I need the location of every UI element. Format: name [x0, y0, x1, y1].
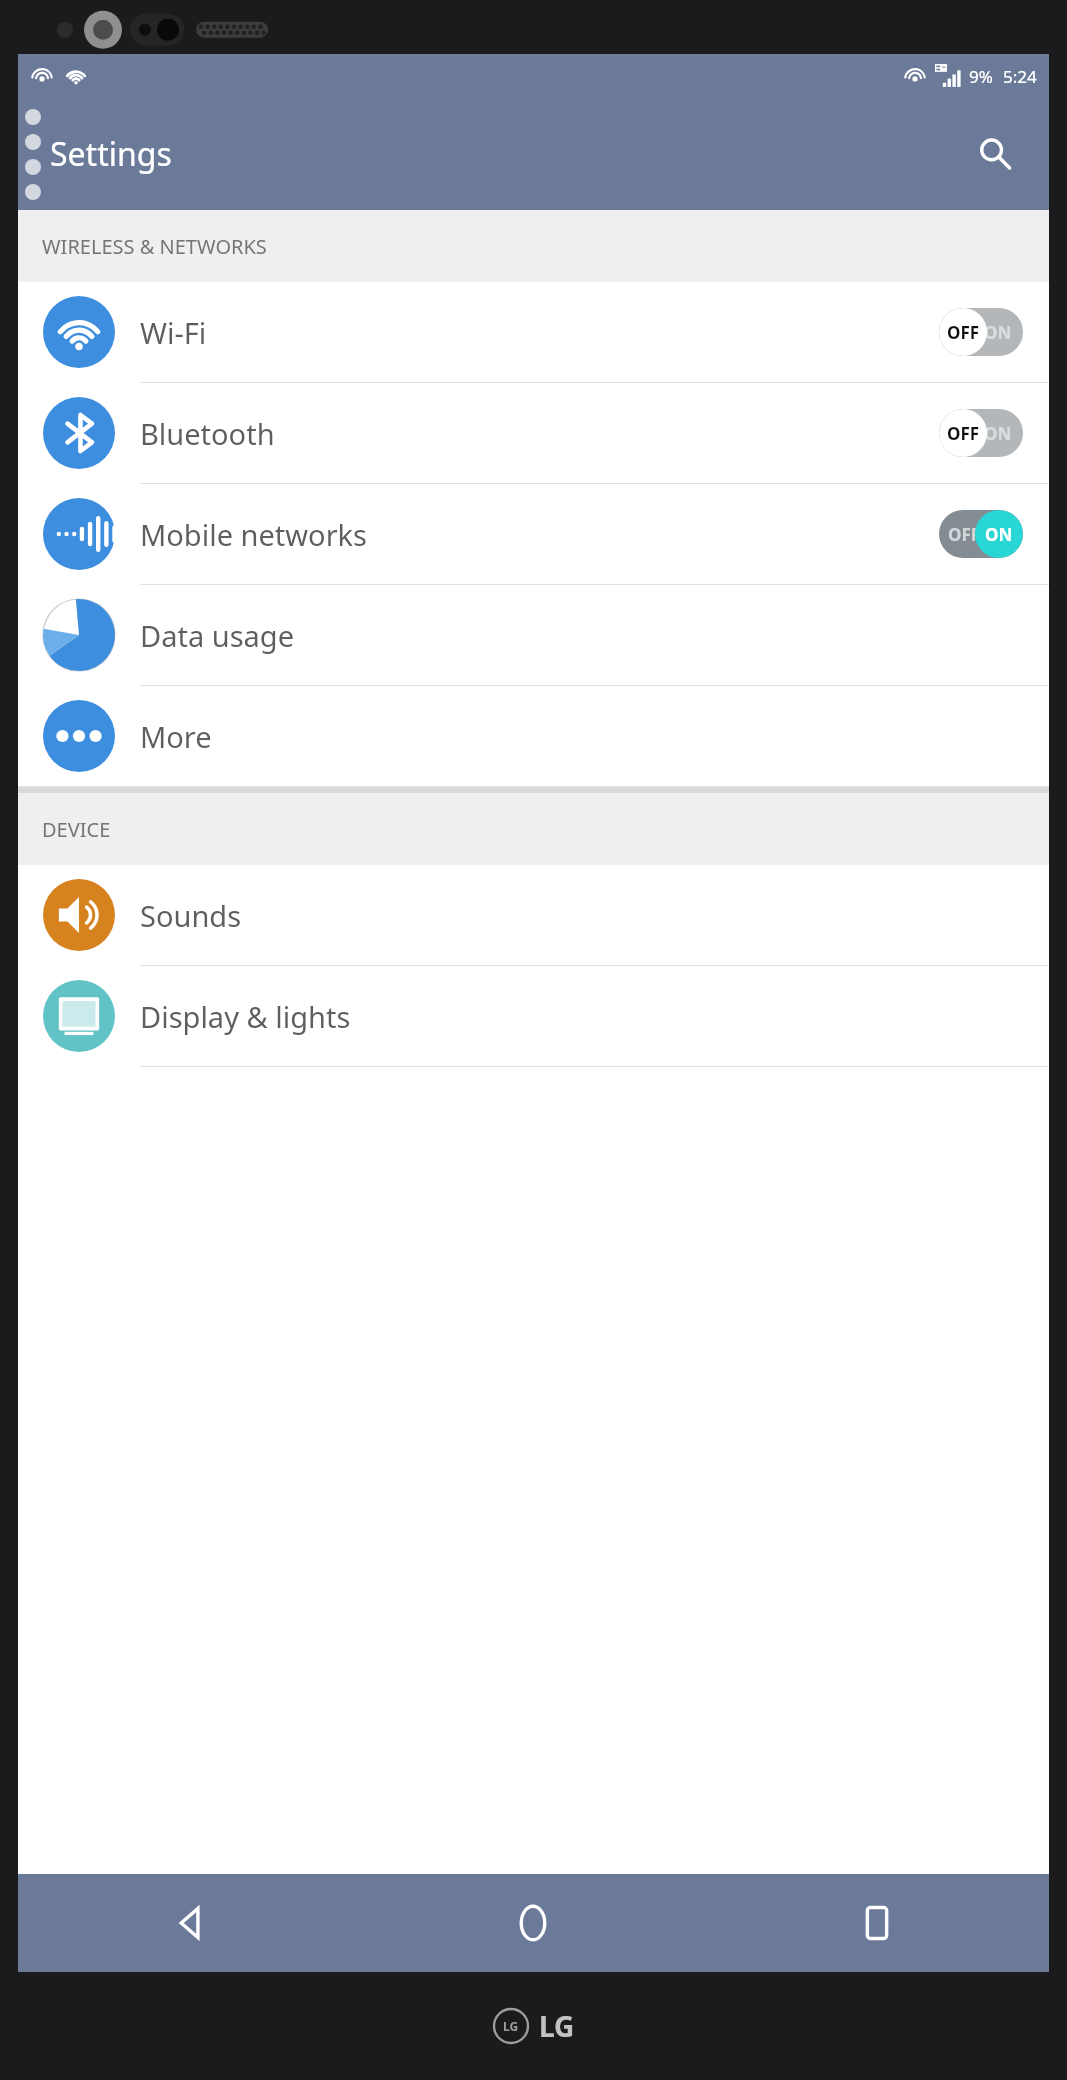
staticText: Bluetooth: [140, 414, 939, 453]
staticText: More: [140, 717, 1049, 756]
button[interactable]: Display & lights: [18, 966, 1049, 1067]
staticText: ON: [985, 523, 1013, 546]
staticText: 9%: [969, 65, 993, 88]
button[interactable]: Search: [965, 124, 1025, 184]
button[interactable]: More: [18, 686, 1049, 787]
staticText: DEVICE: [42, 816, 111, 843]
button[interactable]: Switch off: [939, 409, 1023, 457]
button[interactable]: Back: [18, 1874, 361, 1972]
staticText: ON: [984, 321, 1012, 344]
staticText: Wi-Fi: [140, 313, 939, 352]
staticText: Data usage: [140, 616, 1049, 655]
staticText: Settings: [50, 132, 172, 176]
button[interactable]: Switch on: [939, 510, 1023, 558]
button[interactable]: Bluetooth: [18, 383, 1049, 484]
staticText: Sounds: [140, 896, 1049, 935]
staticText: Display & lights: [140, 997, 1049, 1036]
button[interactable]: Home: [361, 1874, 705, 1972]
staticText: Mobile networks: [140, 515, 939, 554]
staticText: 5:24: [1003, 65, 1037, 88]
staticText: ON: [984, 422, 1012, 445]
staticText: OFF: [947, 321, 980, 344]
staticText: OFF: [948, 523, 981, 546]
button[interactable]: Wi-Fi: [18, 282, 1049, 383]
button[interactable]: Mobile networks: [18, 484, 1049, 585]
staticText: LG: [539, 2007, 575, 2045]
button[interactable]: Recent apps: [705, 1874, 1049, 1972]
staticText: WIRELESS & NETWORKS: [42, 233, 267, 260]
button[interactable]: Sounds: [18, 865, 1049, 966]
staticText: OFF: [947, 422, 980, 445]
staticText: LG: [503, 2018, 519, 2034]
button[interactable]: Switch off: [939, 308, 1023, 356]
button[interactable]: Data usage: [18, 585, 1049, 686]
